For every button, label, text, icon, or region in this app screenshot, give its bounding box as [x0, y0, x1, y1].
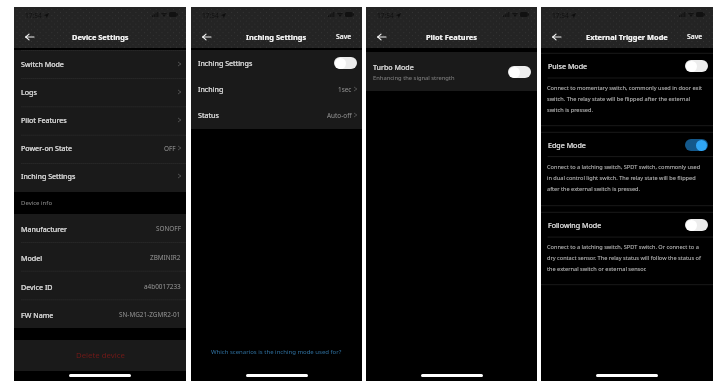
staticText: SN-MG21-ZGMR2-01 — [119, 310, 181, 319]
button[interactable]: Status — [191, 102, 362, 128]
staticText: Inching Settings — [21, 171, 76, 181]
staticText: Power-on State — [21, 143, 73, 153]
staticText: Auto-off — [327, 111, 352, 120]
staticText: Device ID — [21, 282, 53, 292]
button[interactable]: Inching Settings — [191, 50, 362, 76]
button[interactable]: Following Mode — [541, 212, 713, 237]
staticText: Connect to a latching switch, SPDT switc… — [547, 163, 701, 193]
staticText: Inching Settings — [246, 32, 307, 42]
button[interactable]: Delete device — [14, 340, 186, 371]
button[interactable]: FW Name — [14, 301, 186, 328]
button[interactable]: Switch Mode — [14, 50, 186, 78]
staticText: Device Settings — [72, 32, 129, 42]
button[interactable]: Edge Mode — [541, 132, 713, 157]
staticText: 17:54 — [202, 11, 219, 20]
button[interactable]: Turbo Mode — [366, 52, 537, 91]
staticText: 17:54 — [552, 11, 569, 20]
button[interactable]: Logs — [14, 78, 186, 106]
staticText: Enhancing the signal strength — [373, 74, 455, 82]
staticText: Delete device — [76, 350, 125, 361]
staticText: External Trigger Mode — [586, 32, 668, 42]
button[interactable]: Device ID — [14, 272, 186, 301]
staticText: 17:54 — [377, 11, 394, 20]
button[interactable]: Switch off — [685, 60, 708, 72]
button[interactable]: Power-on State — [14, 134, 186, 162]
staticText: FW Name — [21, 310, 54, 320]
staticText: 17:54 — [25, 11, 42, 20]
button[interactable]: Model — [14, 243, 186, 272]
staticText: Pilot Features — [426, 32, 477, 42]
staticText: Device info — [21, 199, 53, 207]
button[interactable]: Switch off — [508, 66, 531, 78]
staticText: Status — [198, 110, 219, 120]
staticText: Switch Mode — [21, 59, 64, 69]
button[interactable]: Pulse Mode — [541, 53, 713, 78]
staticText: Pilot Features — [21, 115, 67, 125]
button[interactable]: Back — [14, 25, 44, 48]
button[interactable]: Switch off — [334, 57, 357, 69]
staticText: Connect to a latching switch, SPDT switc… — [547, 243, 701, 273]
staticText: 1sec — [338, 85, 352, 94]
button[interactable]: Back — [191, 25, 221, 48]
staticText: Turbo Mode — [373, 62, 414, 72]
button[interactable]: Pilot Features — [14, 106, 186, 134]
staticText: Save — [687, 32, 703, 41]
staticText: SONOFF — [156, 224, 181, 233]
button[interactable]: Back — [541, 25, 571, 48]
button[interactable]: Back — [366, 25, 396, 48]
staticText: Pulse Mode — [548, 61, 588, 71]
staticText: Which scenarios is the inching mode used… — [211, 348, 342, 356]
button[interactable]: Manufacturer — [14, 214, 186, 243]
staticText: Model — [21, 253, 43, 263]
button[interactable]: Save — [679, 25, 713, 48]
staticText: Manufacturer — [21, 224, 67, 234]
staticText: Save — [336, 32, 352, 41]
button[interactable]: Inching — [191, 76, 362, 102]
button[interactable]: Switch on — [685, 139, 708, 151]
staticText: OFF — [164, 144, 176, 153]
staticText: a4b0017233 — [144, 282, 181, 291]
button[interactable]: Switch off — [685, 219, 708, 231]
staticText: Following Mode — [548, 220, 602, 230]
button[interactable]: Inching Settings — [14, 162, 186, 190]
button[interactable]: Save — [328, 25, 362, 48]
staticText: Inching Settings — [198, 58, 253, 68]
staticText: Connect to momentary switch, commonly us… — [547, 84, 702, 114]
staticText: Logs — [21, 87, 37, 97]
staticText: Inching — [198, 84, 224, 94]
button[interactable]: Which scenarios is the inching mode used… — [191, 348, 362, 356]
staticText: ZBMINIR2 — [150, 253, 181, 262]
staticText: Edge Mode — [548, 140, 586, 150]
